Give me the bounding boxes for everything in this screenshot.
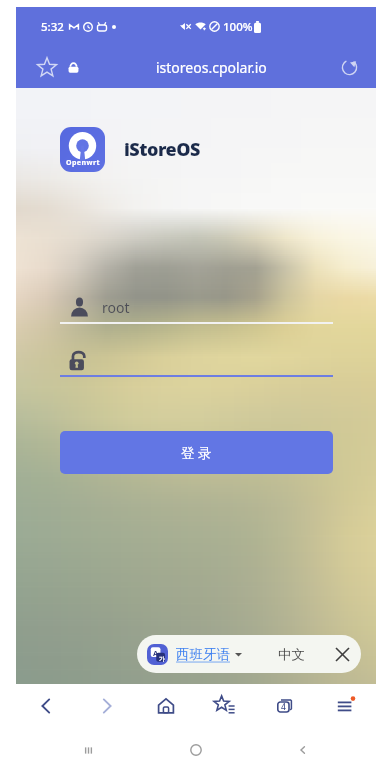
staticText: istoreos.cpolar.io (156, 58, 267, 77)
button[interactable]: 登 录 (60, 431, 333, 474)
button[interactable]: Site information (59, 53, 87, 81)
button[interactable]: Menu (323, 684, 367, 728)
staticText: iStoreOS (124, 137, 200, 162)
button[interactable]: Forward (85, 684, 129, 728)
button[interactable]: Reload page (334, 52, 364, 82)
staticText: Openwrt (66, 158, 100, 168)
button[interactable]: Close translate bar (329, 641, 355, 667)
button[interactable]: Back (24, 684, 68, 728)
button[interactable]: 中文 (276, 646, 307, 663)
button[interactable]: Home (176, 730, 216, 770)
staticText: 西班牙语 (176, 646, 230, 663)
staticText: 100% (223, 19, 253, 35)
button[interactable]: Recent apps (68, 730, 108, 770)
staticText: 5:32 (41, 19, 64, 35)
button[interactable]: Bookmarks (204, 684, 248, 728)
button[interactable]: Bookmark (33, 53, 61, 81)
staticText: A (153, 648, 159, 658)
staticText: 登 录 (181, 444, 212, 462)
button[interactable]: Home (144, 684, 188, 728)
staticText: root (102, 298, 130, 317)
button[interactable]: 西班牙语 (176, 646, 242, 663)
staticText: 가 (159, 655, 165, 663)
staticText: 中文 (278, 646, 305, 663)
staticText: 4 (281, 701, 286, 713)
button[interactable]: Tabs (263, 684, 307, 728)
button[interactable]: Back (283, 730, 323, 770)
